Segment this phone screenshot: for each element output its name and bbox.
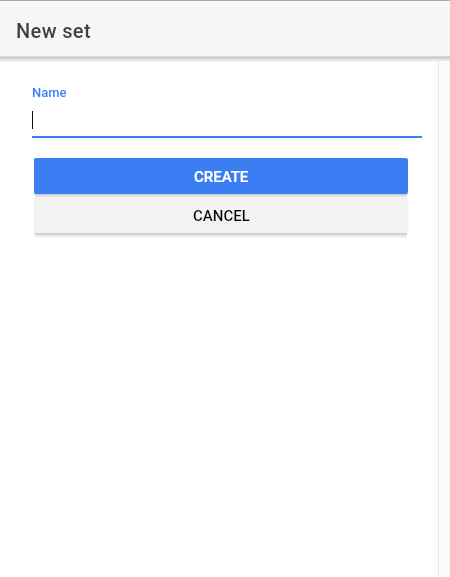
button[interactable]: CANCEL <box>34 197 408 233</box>
button[interactable]: CREATE <box>34 158 408 194</box>
staticText: New set <box>16 19 91 42</box>
button[interactable]: Name text field <box>32 111 422 129</box>
staticText: Name <box>32 85 67 100</box>
staticText: CANCEL <box>193 207 250 225</box>
staticText: CREATE <box>194 168 249 186</box>
